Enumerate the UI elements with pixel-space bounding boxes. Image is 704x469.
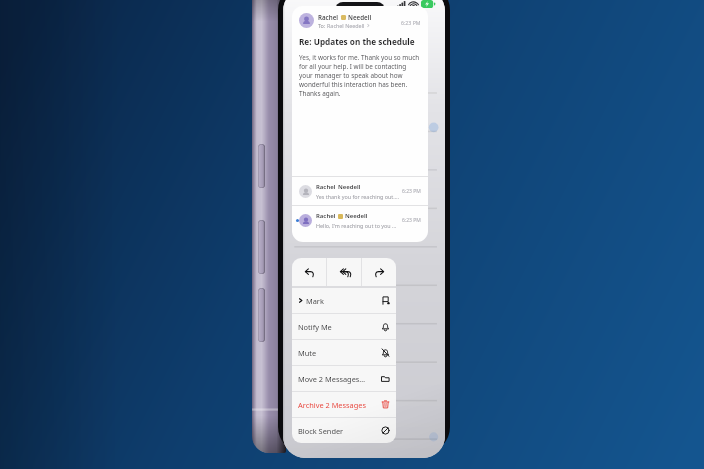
button[interactable]: Reply All [327, 258, 361, 286]
staticText: Needell [345, 212, 368, 220]
button[interactable]: Reply [292, 258, 326, 286]
staticText: Rachel [316, 183, 336, 191]
staticText: Yes thank you for reaching out. I have u… [316, 193, 399, 200]
staticText: Rachel Needell [327, 22, 365, 29]
button[interactable]: Forward [362, 258, 396, 286]
staticText: Rachel [318, 13, 339, 21]
button[interactable]: Rachel [292, 6, 428, 242]
staticText: Archive 2 Messages [298, 400, 381, 410]
staticText: Yes, it works for me. Thank you so much … [299, 53, 421, 98]
staticText: Block Sender [298, 426, 381, 436]
button[interactable]: Move 2 Messages… [292, 366, 396, 391]
button[interactable]: Rachel [292, 206, 428, 234]
staticText: Notify Me [298, 322, 381, 332]
button[interactable]: Mute [292, 340, 396, 365]
staticText: Hello, I'm reaching out to you about pot… [316, 222, 399, 229]
button[interactable]: Block Sender [292, 418, 396, 443]
staticText: Move 2 Messages… [298, 374, 381, 384]
staticText: Needell [348, 13, 372, 21]
other: Side button [258, 220, 265, 274]
staticText: Needell [338, 183, 361, 191]
button[interactable]: Notify Me [292, 314, 396, 339]
other: Side button [258, 144, 265, 188]
staticText: 6:23 PM [402, 217, 421, 224]
staticText: Mute [298, 348, 381, 358]
other: Side button [258, 288, 265, 342]
button[interactable]: Mark [292, 288, 396, 313]
staticText: Mark [306, 296, 381, 306]
button[interactable]: Rachel [292, 177, 428, 205]
staticText: Re: Updates on the schedule [299, 36, 415, 47]
staticText: 6:23 PM [401, 19, 421, 26]
staticText: To: [318, 22, 327, 29]
staticText: 6:23 PM [402, 188, 421, 195]
button[interactable]: Archive 2 Messages [292, 392, 396, 417]
staticText: Rachel [316, 212, 336, 220]
